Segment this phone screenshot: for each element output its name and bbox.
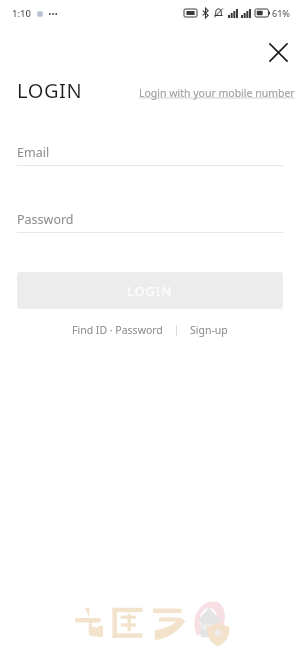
button[interactable]: Login with your mobile number	[137, 84, 297, 102]
staticText: 61%	[272, 7, 290, 19]
staticText: 1:10	[12, 7, 31, 20]
button[interactable]: Find ID · Password	[68, 320, 167, 340]
staticText: LOGIN	[127, 282, 173, 300]
staticText: Find ID · Password	[72, 323, 163, 337]
staticText: Login with your mobile number	[139, 86, 295, 100]
staticText: LOGIN	[17, 77, 83, 104]
staticText: Email	[17, 144, 50, 161]
button[interactable]: Close	[262, 36, 295, 69]
staticText: Password	[17, 211, 74, 228]
staticText: Sign-up	[190, 323, 228, 337]
button[interactable]: Sign-up	[186, 320, 232, 340]
